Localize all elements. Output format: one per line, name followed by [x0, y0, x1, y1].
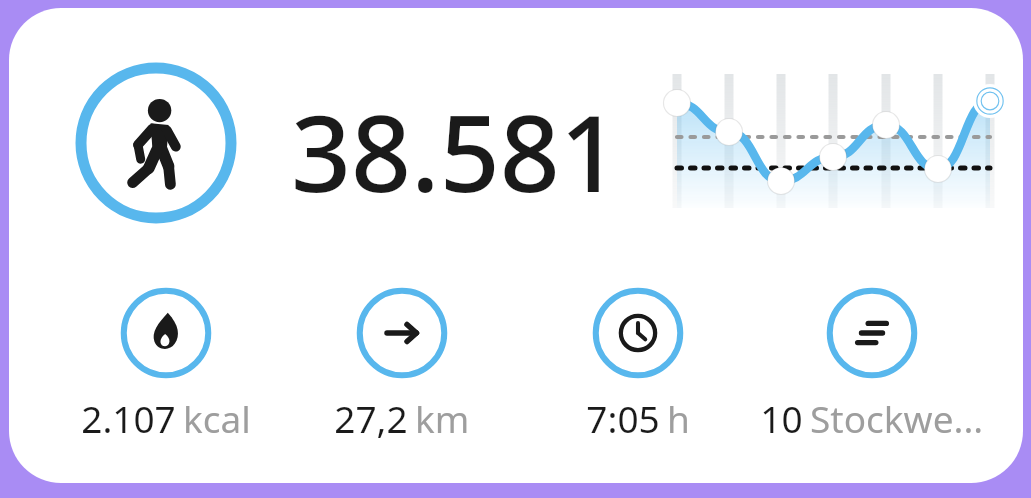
staticText: 2.107	[81, 393, 176, 443]
staticText: 7:05	[586, 393, 660, 443]
staticText: 38.581	[291, 80, 620, 223]
button[interactable]: 27,2	[277, 285, 527, 450]
staticText: km	[415, 393, 470, 443]
staticText: kcal	[183, 393, 251, 443]
staticText: 10	[760, 393, 803, 443]
button[interactable]: 38.581	[291, 80, 620, 223]
staticText: h	[667, 393, 690, 443]
staticText: Stockwe...	[810, 393, 984, 443]
button[interactable]: 7:05	[513, 285, 763, 450]
button[interactable]: Steps	[66, 53, 246, 233]
button[interactable]: Weekly steps chart	[664, 66, 1009, 218]
staticText: 27,2	[334, 393, 408, 443]
button[interactable]: 10	[747, 285, 997, 450]
button[interactable]: Steps	[9, 8, 1023, 483]
button[interactable]: 2.107	[41, 285, 291, 450]
